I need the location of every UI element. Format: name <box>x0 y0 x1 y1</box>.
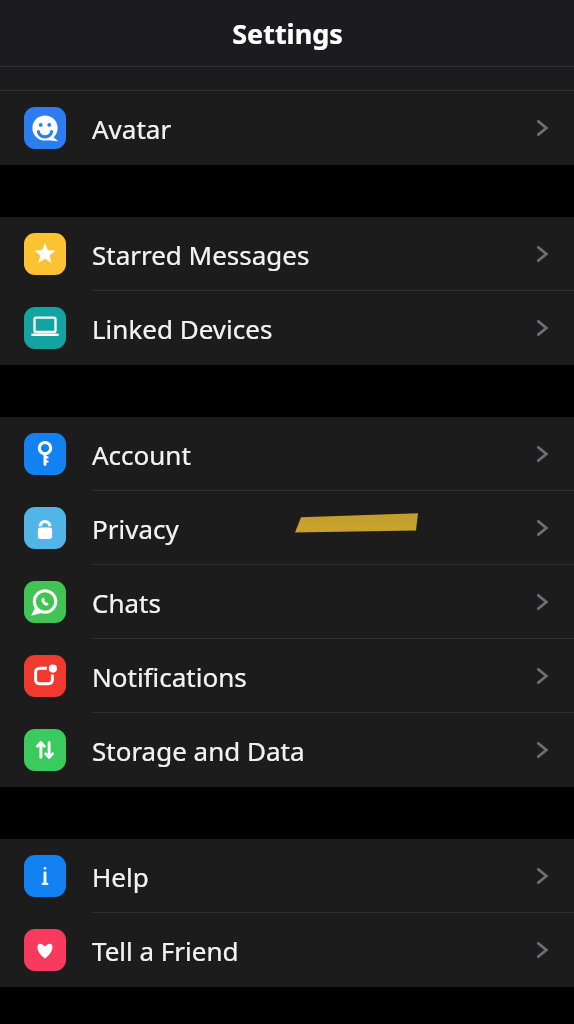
other: Open Storage and Data <box>520 728 564 772</box>
other: Open Tell a Friend <box>520 928 564 972</box>
other: Open Avatar <box>520 106 564 150</box>
other: Open Notifications <box>520 654 564 698</box>
staticText: Storage and Data <box>92 733 305 768</box>
button[interactable]: Privacy <box>0 491 574 565</box>
staticText: Privacy <box>92 511 179 546</box>
staticText: Account <box>92 437 191 472</box>
staticText: Notifications <box>92 659 247 694</box>
other: Open Privacy <box>520 506 564 550</box>
button[interactable]: Help <box>0 839 574 913</box>
button[interactable]: Account <box>0 417 574 491</box>
other: Open Chats <box>520 580 564 624</box>
staticText: Chats <box>92 585 161 620</box>
staticText: Tell a Friend <box>92 933 239 968</box>
staticText: Help <box>92 859 149 894</box>
other: Open Starred Messages <box>520 232 564 276</box>
button[interactable]: Storage and Data <box>0 713 574 787</box>
staticText: Avatar <box>92 111 172 146</box>
button[interactable]: Starred Messages <box>0 217 574 291</box>
other: Open Linked Devices <box>520 306 564 350</box>
button[interactable]: Avatar <box>0 91 574 165</box>
staticText: Linked Devices <box>92 311 273 346</box>
button[interactable]: Linked Devices <box>0 291 574 365</box>
other: Open Account <box>520 432 564 476</box>
other: Open Help <box>520 854 564 898</box>
staticText: Starred Messages <box>92 237 310 272</box>
button[interactable]: Notifications <box>0 639 574 713</box>
staticText: Settings <box>232 15 343 52</box>
button[interactable]: Chats <box>0 565 574 639</box>
button[interactable]: Tell a Friend <box>0 913 574 987</box>
